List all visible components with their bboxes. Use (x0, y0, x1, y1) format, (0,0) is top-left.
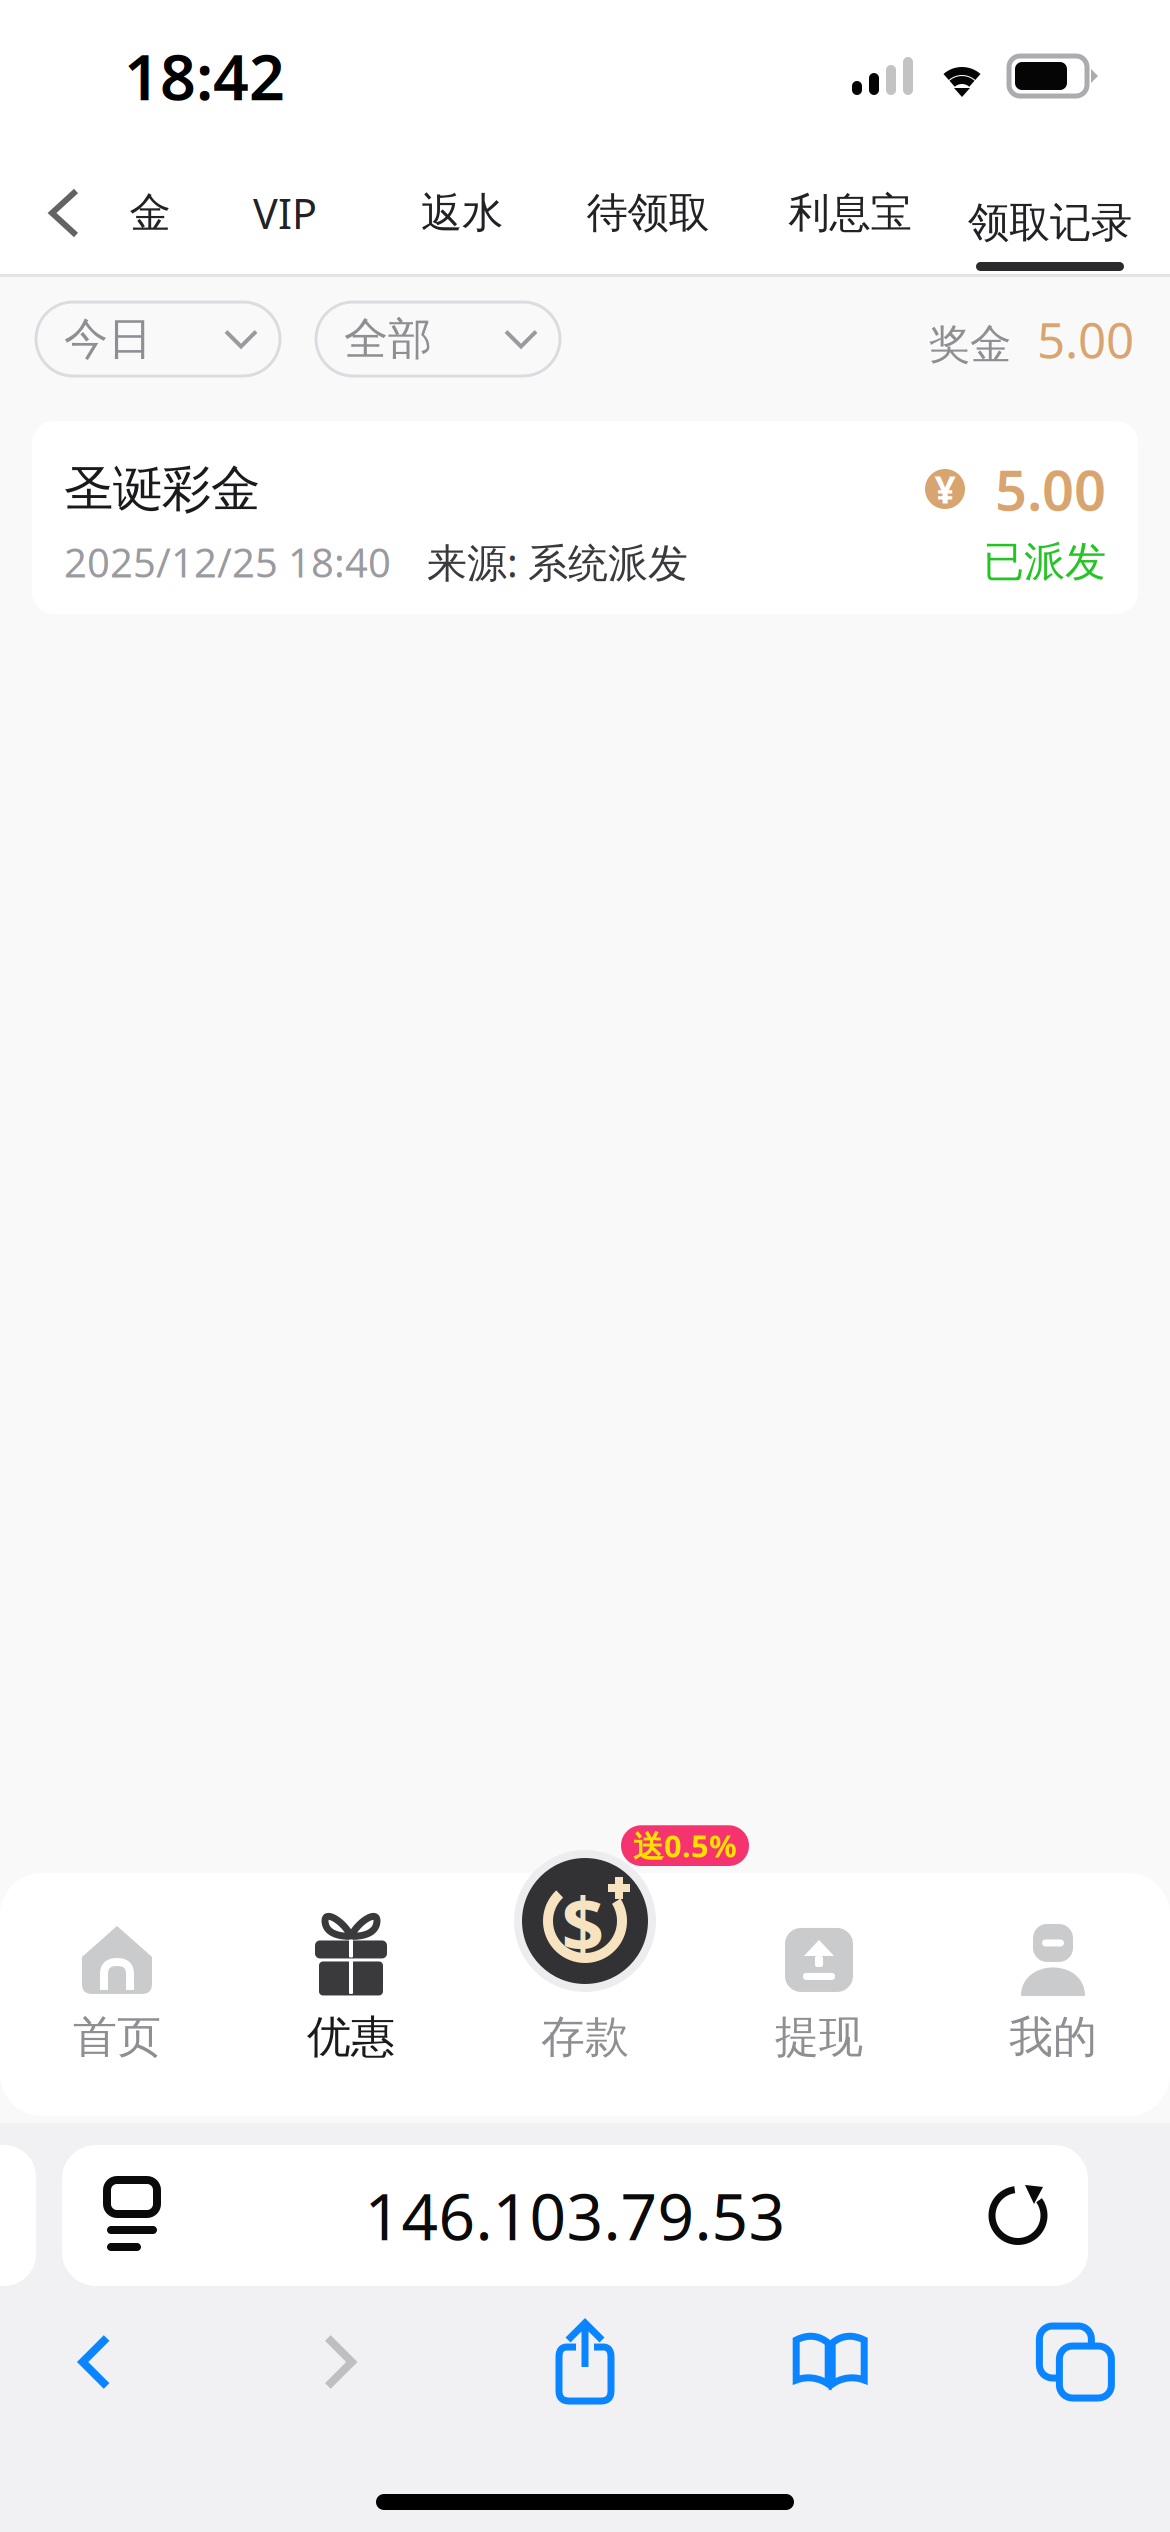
button[interactable]: 全部 (316, 302, 560, 376)
staticText: 存款 (541, 2010, 629, 2064)
staticText: 返水 (421, 188, 503, 238)
staticText: 全部 (344, 312, 432, 366)
staticText: 圣诞彩金 (64, 459, 260, 519)
button[interactable]: Bookmarks (708, 2306, 953, 2418)
button[interactable]: Back (0, 2306, 217, 2418)
button[interactable]: Tabs (953, 2306, 1170, 2418)
button[interactable]: 提现 (702, 1873, 936, 2116)
staticText: 来源: 系统派发 (391, 535, 688, 588)
staticText: 5.00 (965, 452, 1106, 526)
staticText: VIP (253, 186, 317, 240)
button[interactable]: 待领取 (546, 152, 750, 274)
staticText: 送0.5% (633, 1825, 737, 1866)
staticText: 18:42 (124, 34, 285, 118)
button[interactable]: 返水 (378, 152, 546, 274)
button[interactable]: 首页 (0, 1873, 234, 2116)
staticText: 已派发 (983, 537, 1106, 587)
button[interactable]: Page settings (76, 2145, 188, 2286)
staticText: 5.00 (1011, 306, 1134, 372)
staticText: 奖金 (929, 319, 1011, 370)
staticText: 优惠 (307, 2010, 395, 2064)
staticText: 领取记录 (968, 197, 1132, 248)
staticText: 146.103.79.53 (364, 2173, 785, 2258)
button[interactable]: Forward (217, 2306, 462, 2418)
staticText: 今日 (64, 312, 152, 366)
staticText: 2025/12/25 18:40 (64, 535, 391, 588)
button[interactable]: Share (462, 2306, 708, 2418)
button[interactable]: 金 (108, 152, 192, 274)
staticText: ¥ (934, 464, 955, 514)
staticText: 待领取 (586, 188, 709, 238)
button[interactable]: 我的 (936, 1873, 1170, 2116)
button[interactable]: 存款 (511, 1847, 659, 1995)
staticText: 我的 (1009, 2010, 1097, 2064)
staticText: 金 (129, 188, 170, 238)
button[interactable]: Reload (962, 2145, 1074, 2286)
button[interactable]: 利息宝 (750, 152, 950, 274)
button[interactable]: 今日 (36, 302, 280, 376)
staticText: $ (561, 1873, 604, 1973)
button[interactable]: Back (20, 152, 108, 274)
staticText: 提现 (775, 2010, 863, 2064)
button[interactable]: VIP (192, 152, 378, 274)
staticText: 利息宝 (788, 188, 911, 238)
button[interactable]: 优惠 (234, 1873, 468, 2116)
staticText: 首页 (73, 2010, 161, 2064)
